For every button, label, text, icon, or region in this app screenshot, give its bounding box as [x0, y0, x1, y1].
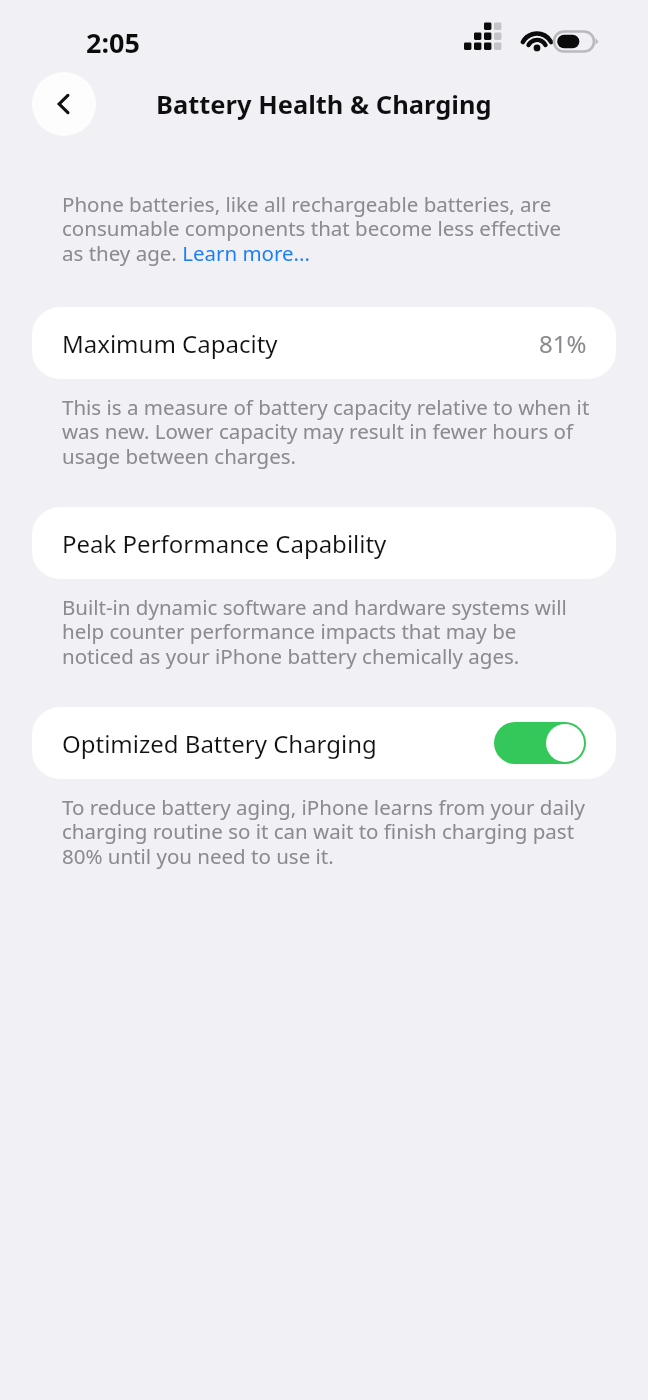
button[interactable]: Maximum Capacity [32, 307, 616, 379]
button[interactable]: Optimized Battery Charging toggle [494, 722, 586, 764]
button[interactable]: Optimized Battery Charging [32, 707, 616, 779]
button[interactable]: Back [32, 72, 96, 136]
staticText: Phone batteries, like all rechargeable b… [62, 190, 582, 267]
staticText: Maximum Capacity [62, 327, 278, 360]
staticText: 81% [539, 327, 587, 360]
staticText: Optimized Battery Charging [62, 727, 377, 760]
staticText: To reduce battery aging, iPhone learns f… [62, 793, 592, 870]
button[interactable]: Peak Performance Capability [32, 507, 616, 579]
staticText: 2:05 [86, 24, 140, 58]
staticText: Built-in dynamic software and hardware s… [62, 593, 592, 670]
staticText: This is a measure of battery capacity re… [62, 393, 592, 470]
staticText: Battery Health & Charging [156, 87, 492, 122]
staticText: Peak Performance Capability [62, 527, 387, 560]
